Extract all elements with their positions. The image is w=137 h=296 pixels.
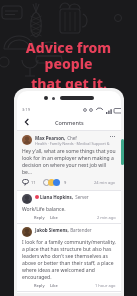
staticText: 1 hour ago xyxy=(95,283,116,288)
staticText: that get it. xyxy=(31,74,107,93)
button[interactable]: Profile photo xyxy=(17,224,121,291)
staticText: 3:19 xyxy=(22,107,30,112)
staticText: Bartender xyxy=(69,227,92,233)
staticText: Hey y'all, what are some things that you… xyxy=(22,148,116,176)
button[interactable]: Back xyxy=(21,116,33,128)
staticText: Comments xyxy=(55,119,84,126)
button[interactable]: Profile photo xyxy=(22,227,32,237)
button[interactable]: Profile photo xyxy=(22,194,32,204)
button[interactable]: Reply xyxy=(34,215,45,220)
button[interactable]: Reactions xyxy=(43,179,67,186)
staticText: Chef xyxy=(66,135,77,141)
button[interactable]: Profile photo xyxy=(22,135,32,145)
button[interactable]: Profile photo xyxy=(17,131,121,190)
staticText: 11 xyxy=(31,180,36,185)
button[interactable]: More options xyxy=(110,136,116,137)
staticText: Liana Hopkins, xyxy=(40,194,74,200)
staticText: Health · Family Needs · Medical Support … xyxy=(35,141,110,146)
staticText: Server xyxy=(74,194,89,200)
button[interactable]: Reply xyxy=(34,283,45,288)
button[interactable]: Like xyxy=(50,215,58,220)
staticText: 2 min ago xyxy=(97,215,116,220)
staticText: Jakob Siemens, xyxy=(35,227,69,233)
staticText: Max Pearson, xyxy=(35,135,66,141)
button[interactable]: Like xyxy=(50,283,58,288)
staticText: I look for a family community/mentality,… xyxy=(22,239,116,281)
staticText: 24 min ago xyxy=(94,180,116,185)
button[interactable]: Comments xyxy=(22,179,36,186)
staticText: Work/Life balance. xyxy=(22,206,66,213)
staticText: 9 xyxy=(64,180,67,185)
staticText: Advice from people xyxy=(8,38,129,73)
button[interactable]: Profile photo xyxy=(17,191,121,223)
